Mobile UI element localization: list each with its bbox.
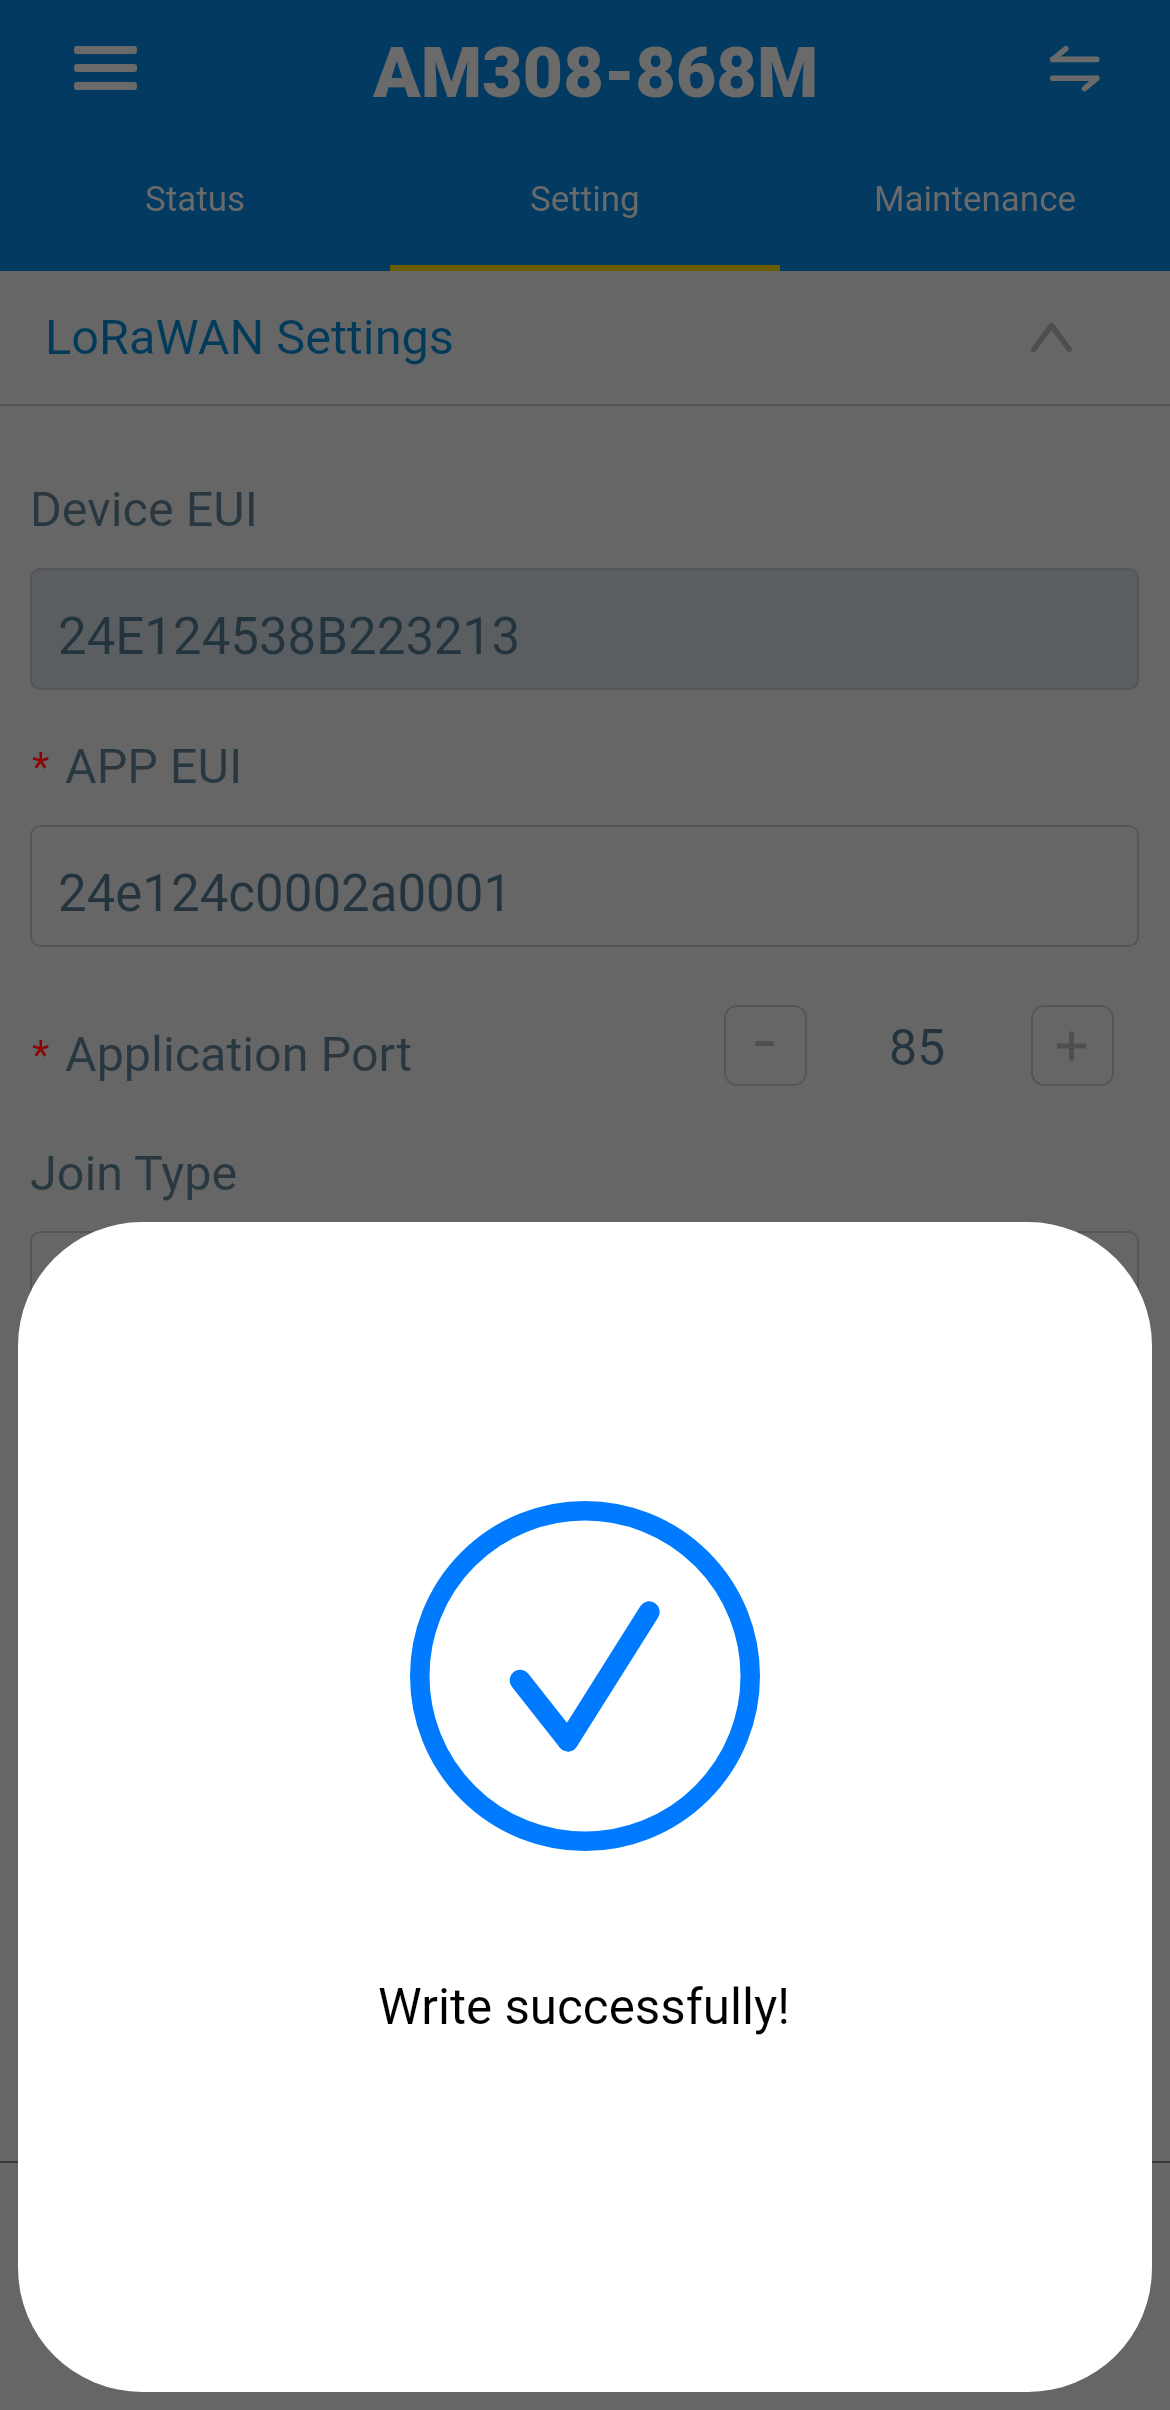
- staticText: APP EUI: [65, 738, 243, 795]
- staticText: Device EUI: [30, 481, 258, 538]
- button[interactable]: Menu: [46, 12, 164, 130]
- staticText: *: [32, 1032, 50, 1079]
- button[interactable]: Write successfully!: [18, 1222, 1152, 2392]
- button[interactable]: Increase: [1031, 1005, 1114, 1086]
- staticText: Application Port: [65, 1026, 413, 1083]
- button[interactable]: Maintenance: [780, 140, 1170, 271]
- staticText: LoRaWAN Settings: [45, 309, 454, 366]
- button[interactable]: 24e124c0002a0001: [30, 825, 1139, 947]
- staticText: 85: [862, 1019, 972, 1078]
- staticText: *: [32, 744, 50, 791]
- staticText: AM308-868M: [373, 32, 819, 114]
- staticText: 24E124538B223213: [58, 607, 521, 667]
- button[interactable]: 24E124538B223213: [30, 568, 1139, 690]
- staticText: 24e124c0002a0001: [58, 864, 513, 924]
- button[interactable]: Decrease: [724, 1005, 807, 1086]
- button[interactable]: Setting: [390, 140, 780, 271]
- staticText: Setting: [530, 179, 640, 220]
- button[interactable]: Status: [0, 140, 390, 271]
- button[interactable]: LoRaWAN Settings: [0, 271, 1170, 406]
- staticText: Write successfully!: [18, 1978, 1151, 2036]
- staticText: Maintenance: [874, 179, 1077, 220]
- button[interactable]: OTAA: [30, 1231, 1139, 1353]
- staticText: Join Type: [30, 1145, 238, 1202]
- button[interactable]: Switch device: [1016, 12, 1134, 130]
- staticText: Status: [145, 179, 246, 220]
